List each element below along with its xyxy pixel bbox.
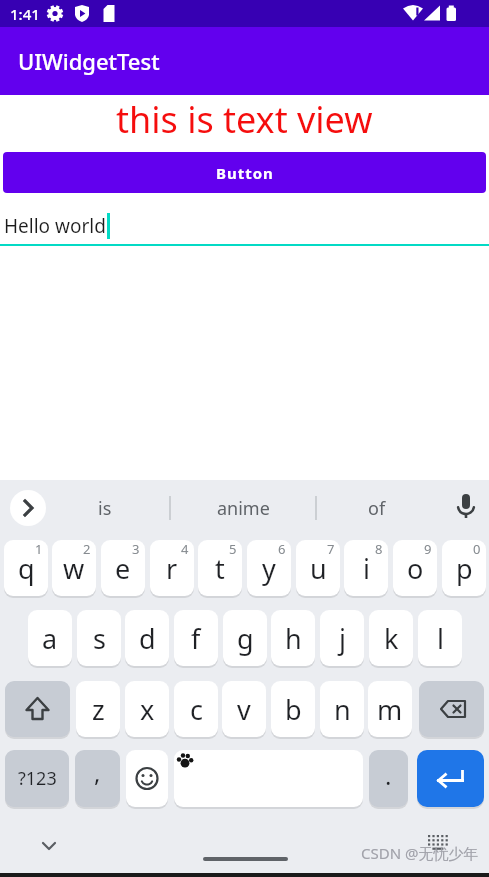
staticText: q xyxy=(18,550,35,587)
staticText: 1 xyxy=(35,540,43,558)
staticText: . xyxy=(385,759,392,792)
button[interactable]: g xyxy=(223,610,267,666)
button[interactable]: . xyxy=(369,750,408,807)
button[interactable]: s xyxy=(77,610,121,666)
staticText: 9 xyxy=(424,540,432,558)
button[interactable]: n xyxy=(320,681,364,737)
staticText: w xyxy=(63,550,85,587)
staticText: x xyxy=(140,691,155,728)
button[interactable]: p xyxy=(442,540,486,596)
staticText: i xyxy=(363,550,370,587)
staticText: d xyxy=(139,620,156,657)
staticText: a xyxy=(42,620,58,657)
staticText: h xyxy=(285,620,302,657)
staticText: ?123 xyxy=(18,766,57,791)
button[interactable]: x xyxy=(125,681,169,737)
staticText: 6 xyxy=(278,540,286,558)
button[interactable]: of xyxy=(332,480,422,536)
staticText: m xyxy=(377,691,403,728)
button[interactable]: h xyxy=(271,610,315,666)
button[interactable] xyxy=(31,828,67,864)
button[interactable] xyxy=(417,750,484,807)
staticText: l xyxy=(437,620,444,657)
button[interactable]: y xyxy=(247,540,291,596)
button[interactable] xyxy=(10,490,46,526)
button[interactable]: z xyxy=(76,681,120,737)
button[interactable]: Hello world xyxy=(0,211,489,241)
button[interactable] xyxy=(193,846,298,872)
staticText: r xyxy=(166,550,178,587)
staticText: c xyxy=(190,691,203,728)
staticText: e xyxy=(115,550,131,587)
staticText: u xyxy=(310,550,327,587)
staticText: Hello world xyxy=(4,213,106,239)
staticText: CSDN @无忧少年 xyxy=(361,843,479,863)
button[interactable]: anime xyxy=(183,480,303,536)
button[interactable]: u xyxy=(296,540,340,596)
button[interactable] xyxy=(444,484,488,532)
button[interactable] xyxy=(420,824,456,860)
staticText: v xyxy=(237,691,251,728)
button[interactable]: , xyxy=(75,750,120,807)
button[interactable]: m xyxy=(368,681,412,737)
staticText: is xyxy=(98,496,112,521)
staticText: 7 xyxy=(327,540,335,558)
staticText: y xyxy=(262,550,276,587)
staticText: UIWidgetTest xyxy=(18,46,160,76)
staticText: f xyxy=(191,620,201,657)
button[interactable]: w xyxy=(52,540,96,596)
button[interactable]: q xyxy=(4,540,48,596)
staticText: z xyxy=(92,691,105,728)
staticText: 0 xyxy=(473,540,481,558)
button[interactable]: a xyxy=(28,610,72,666)
button[interactable]: b xyxy=(271,681,315,737)
staticText: b xyxy=(285,691,302,728)
button[interactable]: f xyxy=(174,610,218,666)
button[interactable]: Button xyxy=(3,152,486,193)
staticText: 5 xyxy=(229,540,237,558)
staticText: g xyxy=(237,620,254,657)
staticText: 8 xyxy=(375,540,383,558)
button[interactable] xyxy=(174,750,363,807)
staticText: this is text view xyxy=(116,95,373,142)
staticText: Button xyxy=(216,163,274,183)
button[interactable]: k xyxy=(369,610,413,666)
staticText: 1:41 xyxy=(10,4,40,24)
staticText: p xyxy=(456,550,473,587)
button[interactable]: is xyxy=(60,480,150,536)
button[interactable]: o xyxy=(393,540,437,596)
staticText: s xyxy=(93,620,106,657)
staticText: t xyxy=(215,550,225,587)
staticText: of xyxy=(368,496,386,521)
button[interactable] xyxy=(5,681,70,737)
button[interactable]: e xyxy=(101,540,145,596)
staticText: 2 xyxy=(83,540,91,558)
button[interactable] xyxy=(126,750,168,807)
button[interactable]: j xyxy=(320,610,364,666)
button[interactable] xyxy=(419,681,484,737)
button[interactable]: c xyxy=(174,681,218,737)
staticText: anime xyxy=(217,496,270,521)
button[interactable]: v xyxy=(222,681,266,737)
button[interactable]: d xyxy=(125,610,169,666)
button[interactable]: r xyxy=(150,540,194,596)
staticText: o xyxy=(407,550,424,587)
staticText: , xyxy=(94,756,101,789)
staticText: j xyxy=(339,620,346,657)
button[interactable]: ?123 xyxy=(5,750,69,807)
staticText: 4 xyxy=(181,540,189,558)
button[interactable]: i xyxy=(344,540,388,596)
staticText: 3 xyxy=(132,540,140,558)
button[interactable]: l xyxy=(418,610,462,666)
staticText: n xyxy=(334,691,351,728)
button[interactable]: t xyxy=(198,540,242,596)
staticText: k xyxy=(384,620,399,657)
